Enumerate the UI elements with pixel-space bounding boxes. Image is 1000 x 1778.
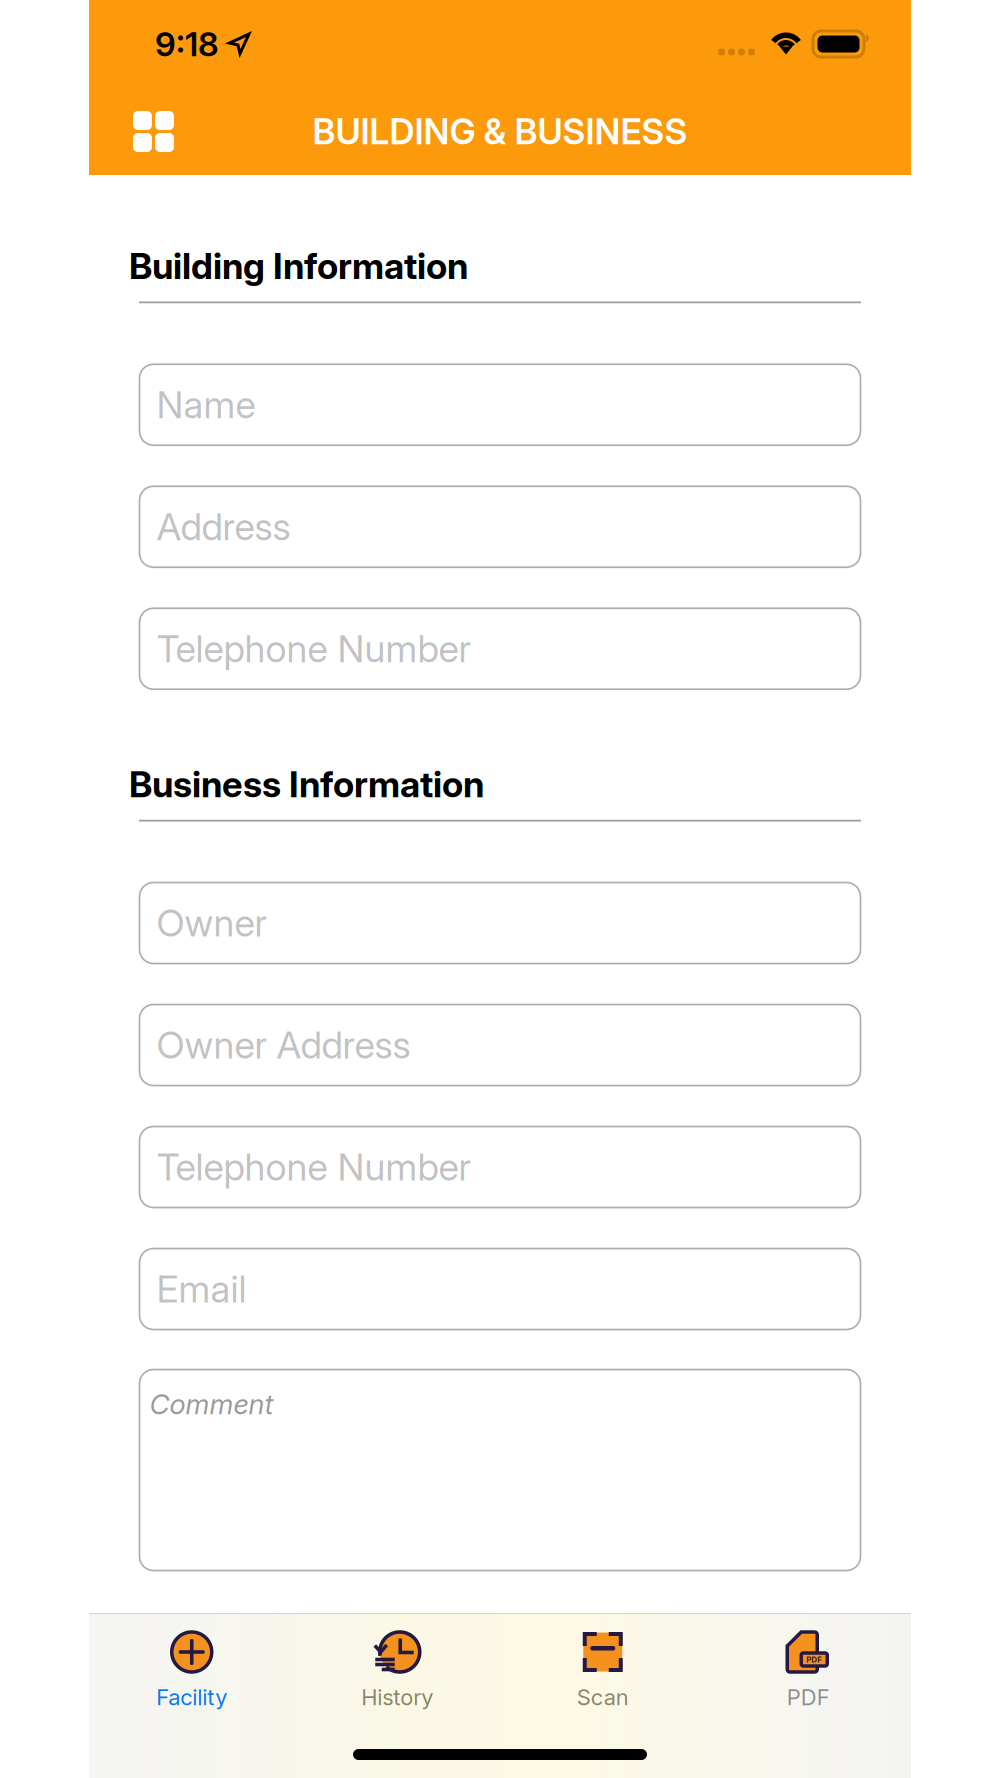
- staticText: 9:18: [155, 24, 219, 64]
- staticText: Email: [156, 1266, 246, 1312]
- button[interactable]: Name: [139, 364, 860, 445]
- staticText: Building Information: [129, 244, 468, 288]
- staticText: Name: [156, 382, 255, 427]
- staticText: PDF: [787, 1684, 830, 1711]
- button[interactable]: Address: [139, 486, 860, 567]
- staticText: Comment: [149, 1387, 273, 1421]
- staticText: BUILDING & BUSINESS: [312, 110, 687, 153]
- button[interactable]: Facility: [89, 1614, 294, 1724]
- staticText: Owner: [156, 900, 266, 946]
- staticText: PDF: [806, 1655, 822, 1664]
- button[interactable]: Menu: [122, 100, 185, 163]
- staticText: Owner Address: [156, 1022, 410, 1068]
- staticText: Telephone Number: [156, 1144, 470, 1190]
- button[interactable]: Telephone Number: [139, 1126, 860, 1207]
- staticText: Facility: [156, 1684, 227, 1711]
- staticText: Business Information: [129, 762, 484, 806]
- button[interactable]: Email: [139, 1248, 860, 1329]
- button[interactable]: Owner Address: [139, 1004, 860, 1085]
- button[interactable]: Telephone Number: [139, 608, 860, 689]
- button[interactable]: Owner: [139, 882, 860, 963]
- staticText: Scan: [577, 1684, 629, 1711]
- staticText: Address: [156, 504, 290, 549]
- staticText: Telephone Number: [156, 626, 470, 671]
- staticText: History: [361, 1684, 433, 1711]
- button[interactable]: Scan: [500, 1614, 705, 1724]
- button[interactable]: PDF: [705, 1614, 911, 1724]
- button[interactable]: History: [294, 1614, 500, 1724]
- button[interactable]: Comment: [139, 1369, 860, 1570]
